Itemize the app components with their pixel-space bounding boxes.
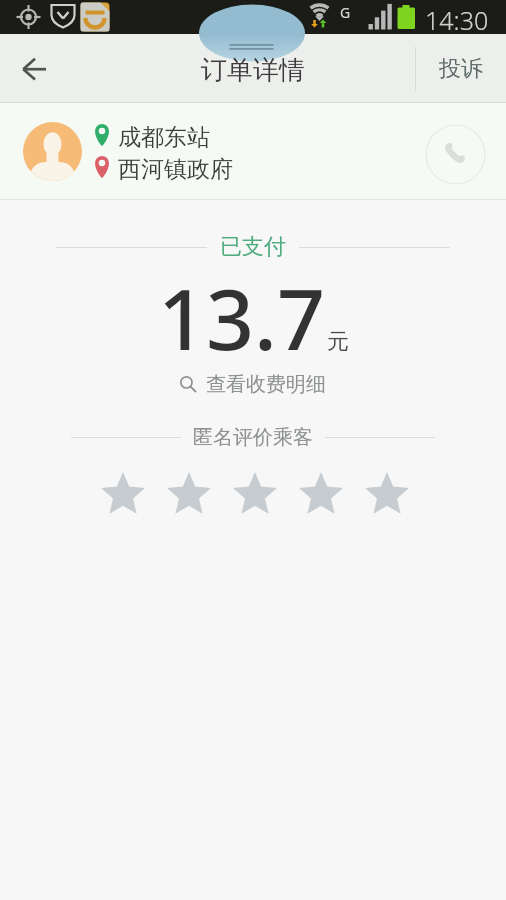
staticText: 订单详情 — [201, 54, 305, 87]
staticText: G — [340, 3, 351, 22]
staticText: 匿名评价乘客 — [193, 425, 313, 450]
staticText: 投诉 — [439, 55, 483, 83]
button[interactable]: Back — [0, 34, 66, 103]
button[interactable]: Call — [425, 124, 486, 185]
staticText: 13.7 — [158, 260, 325, 370]
button[interactable]: 投诉 — [416, 34, 506, 103]
button[interactable]: Rate 3 star — [222, 463, 288, 521]
button[interactable]: Rate 4 star — [288, 463, 354, 521]
staticText: 西河镇政府 — [118, 155, 233, 184]
staticText: 成都东站 — [118, 123, 210, 152]
staticText: 元 — [327, 328, 349, 356]
button[interactable]: 查看收费明细 — [176, 369, 330, 400]
staticText: 已支付 — [220, 233, 286, 261]
button[interactable]: Rate 1 star — [90, 463, 156, 521]
button[interactable]: Rate 5 star — [354, 463, 420, 521]
staticText: 14:30 — [425, 3, 489, 37]
button[interactable]: Rate 2 star — [156, 463, 222, 521]
staticText: 查看收费明细 — [206, 372, 326, 397]
